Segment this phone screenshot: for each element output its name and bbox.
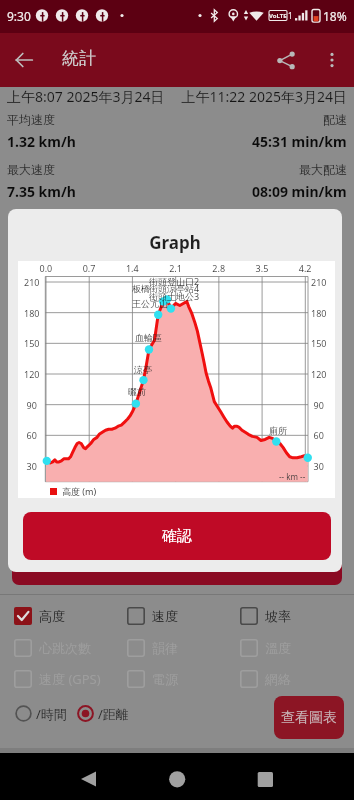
staticText: 1.32 km/h bbox=[7, 132, 76, 151]
staticText: 平均速度 bbox=[7, 112, 55, 127]
staticText: 上午11:22 2025年3月24日 bbox=[0, 87, 347, 106]
staticText: /時間 bbox=[36, 705, 67, 723]
button[interactable]: Share bbox=[272, 46, 300, 74]
button[interactable]: 心跳次數 bbox=[14, 639, 91, 657]
button[interactable]: 韻律 bbox=[127, 639, 178, 657]
staticText: 最大配速 bbox=[299, 162, 347, 177]
button[interactable]: Home bbox=[161, 763, 193, 795]
button[interactable]: /距離 bbox=[76, 704, 129, 723]
button[interactable]: 網絡 bbox=[240, 670, 291, 688]
button[interactable]: 溫度 bbox=[240, 639, 291, 657]
button[interactable]: 查看圖表 bbox=[274, 696, 344, 739]
staticText: 高度 bbox=[39, 608, 65, 624]
staticText: 網絡 bbox=[265, 671, 291, 687]
staticText: 7.35 km/h bbox=[7, 182, 76, 201]
button[interactable]: 高度 bbox=[14, 607, 65, 625]
staticText: VoLTE bbox=[269, 12, 287, 20]
staticText: 配速 bbox=[323, 112, 347, 127]
button[interactable]: 確認 bbox=[23, 512, 331, 560]
button[interactable]: Recent apps bbox=[249, 763, 281, 795]
staticText: 速度 bbox=[152, 608, 178, 624]
staticText: 18% bbox=[323, 8, 347, 24]
staticText: 速度 (GPS) bbox=[39, 670, 101, 688]
button[interactable] bbox=[12, 541, 342, 585]
button[interactable]: 速度 (GPS) bbox=[14, 670, 101, 688]
staticText: 查看圖表 bbox=[281, 709, 337, 727]
button[interactable]: Back bbox=[72, 763, 104, 795]
button[interactable]: More options bbox=[318, 46, 346, 74]
staticText: 韻律 bbox=[152, 640, 178, 656]
button[interactable]: 坡率 bbox=[240, 607, 291, 625]
staticText: 最大速度 bbox=[7, 162, 55, 177]
staticText: /距離 bbox=[98, 705, 129, 723]
staticText: 統計 bbox=[62, 48, 96, 69]
staticText: 上午8:07 2025年3月24日 bbox=[7, 87, 165, 106]
staticText: 坡率 bbox=[265, 608, 291, 624]
button[interactable]: 速度 bbox=[127, 607, 178, 625]
staticText: 1 bbox=[288, 10, 293, 21]
button[interactable]: Back bbox=[8, 44, 40, 76]
staticText: 確認 bbox=[162, 527, 192, 546]
button[interactable]: /時間 bbox=[14, 704, 67, 723]
staticText: Graph bbox=[8, 231, 342, 254]
staticText: 45:31 min/km bbox=[252, 132, 347, 151]
staticText: 電源 bbox=[152, 671, 178, 687]
button[interactable]: 電源 bbox=[127, 670, 178, 688]
staticText: 溫度 bbox=[265, 640, 291, 656]
staticText: 心跳次數 bbox=[39, 640, 91, 656]
staticText: 高度 (m) bbox=[62, 485, 97, 497]
staticText: 08:09 min/km bbox=[252, 182, 347, 201]
staticText: 9:30 bbox=[7, 8, 31, 24]
